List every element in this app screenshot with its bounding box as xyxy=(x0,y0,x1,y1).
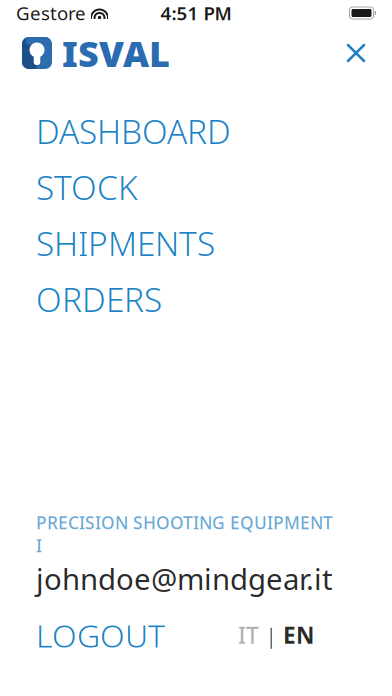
staticText: ISVAL xyxy=(62,29,170,77)
staticText: 4:51 PM xyxy=(160,1,231,25)
staticText: PRECISION SHOOTING EQUIPMENT I xyxy=(36,511,333,557)
button[interactable]: LOGOUT xyxy=(36,618,165,652)
button[interactable]: EN xyxy=(283,620,314,650)
button[interactable]: DASHBOARD xyxy=(0,114,392,148)
staticText: SHIPMENTS xyxy=(36,221,215,265)
staticText: | xyxy=(265,620,277,650)
button[interactable]: STOCK xyxy=(0,170,392,204)
button[interactable]: Close xyxy=(334,31,378,75)
staticText: ORDERS xyxy=(36,277,162,321)
staticText: Gestore xyxy=(16,1,86,25)
staticText: EN xyxy=(283,620,314,650)
staticText: STOCK xyxy=(36,165,138,209)
staticText: johndoe@mindgear.it xyxy=(36,559,333,598)
button[interactable]: ORDERS xyxy=(0,282,392,316)
staticText: LOGOUT xyxy=(36,614,165,656)
button[interactable]: SHIPMENTS xyxy=(0,226,392,260)
staticText: IT xyxy=(238,620,259,650)
button[interactable]: ISVAL home xyxy=(20,29,170,77)
staticText: DASHBOARD xyxy=(36,109,231,153)
button[interactable]: IT xyxy=(238,620,259,650)
